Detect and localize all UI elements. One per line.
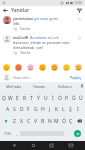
button[interactable]: 0 (63, 90, 70, 103)
button[interactable]: grin (50, 63, 59, 72)
button[interactable]: I (74, 103, 81, 115)
staticText: L (62, 106, 65, 113)
button[interactable]: Yanıt ekle… (12, 75, 69, 80)
staticText: Paylaş (70, 75, 81, 80)
staticText: A (6, 106, 10, 113)
staticText: Ö (62, 118, 66, 125)
staticText: Ü (79, 95, 83, 102)
button[interactable]: hug (2, 63, 11, 72)
staticText: Ç (69, 118, 73, 125)
button[interactable]: Keyboard (67, 142, 74, 149)
button[interactable]: N (46, 115, 53, 127)
button[interactable]: 2 (7, 90, 14, 103)
button[interactable]: Kullanıcı (52, 82, 78, 90)
staticText: yoneticixxx (13, 16, 33, 21)
button[interactable]: Like (76, 16, 82, 22)
staticText: Ş (69, 106, 72, 113)
staticText: 6 (38, 92, 40, 95)
button[interactable]: S (11, 103, 18, 115)
button[interactable]: yoneticixxx (0, 14, 85, 33)
button[interactable]: wink (62, 63, 71, 72)
button[interactable]: G (32, 103, 39, 115)
button[interactable]: Backspace (74, 115, 84, 127)
staticText: 1 (3, 92, 5, 95)
staticText: 1g (13, 27, 17, 31)
staticText: E (16, 95, 19, 102)
button[interactable]: 6 (35, 90, 42, 103)
staticText: hazirsiniz, elinde ve pusmani olan ikins… (13, 40, 70, 50)
staticText: S (13, 106, 16, 113)
button[interactable]: X (18, 115, 25, 127)
button[interactable]: Shift (1, 115, 11, 127)
button[interactable]: blossom (26, 63, 35, 72)
button[interactable]: Tamam (26, 82, 52, 90)
button[interactable]: Merhaba (0, 82, 26, 90)
button[interactable]: Back (11, 142, 18, 149)
button[interactable]: Yanıtla (20, 51, 31, 55)
button[interactable]: Ü (77, 90, 84, 103)
button[interactable]: Comma (13, 127, 20, 140)
button[interactable]: Send (71, 127, 84, 140)
button[interactable]: 4 (21, 90, 28, 103)
button[interactable]: B (39, 115, 46, 127)
button[interactable]: 3 (14, 90, 21, 103)
button[interactable]: 5 (28, 90, 35, 103)
button[interactable]: Like (76, 35, 82, 41)
button[interactable]: Ç (67, 115, 74, 127)
button[interactable]: A (4, 103, 11, 115)
staticText: U (44, 95, 48, 102)
staticText: 8 (52, 92, 54, 95)
staticText: I (52, 95, 54, 102)
button[interactable]: ?123 (1, 127, 13, 140)
staticText: 5 (31, 92, 33, 95)
button[interactable]: J (46, 103, 53, 115)
button[interactable]: H (39, 103, 46, 115)
button[interactable]: Ş (67, 103, 74, 115)
staticText: B (41, 118, 45, 125)
staticText: I (77, 106, 79, 113)
staticText: 3dk. (13, 21, 21, 26)
staticText: , (16, 131, 18, 136)
button[interactable]: smile (38, 63, 47, 72)
button[interactable]: laugh (74, 63, 83, 72)
staticText: meLLoW (13, 35, 29, 40)
staticText: M (54, 118, 59, 125)
button[interactable]: Ö (60, 115, 67, 127)
staticText: J (49, 106, 51, 113)
button[interactable]: Voice input (78, 82, 85, 90)
staticText: G (34, 106, 38, 113)
button[interactable]: Paylaş (69, 75, 82, 80)
staticText: X (20, 118, 23, 125)
button[interactable]: C (25, 115, 32, 127)
staticText: 14:05 (74, 1, 83, 5)
button[interactable]: 9 (56, 90, 63, 103)
button[interactable]: 7 (42, 90, 49, 103)
button[interactable]: D (18, 103, 25, 115)
staticText: Yanıt ekle… (13, 75, 32, 80)
button[interactable]: Z (11, 115, 18, 127)
button[interactable]: K (53, 103, 60, 115)
button[interactable]: Filter (76, 7, 83, 14)
button[interactable]: Back (2, 7, 9, 14)
button[interactable]: F (25, 103, 32, 115)
button[interactable]: L (60, 103, 67, 115)
staticText: 0 (66, 92, 68, 95)
button[interactable]: V (32, 115, 39, 127)
staticText: 3 (17, 92, 19, 95)
button[interactable]: Ğ (70, 90, 77, 103)
staticText: 2 (10, 92, 12, 95)
button[interactable]: Recents (48, 142, 55, 149)
button[interactable]: 1 (1, 90, 7, 103)
button[interactable]: Home (30, 142, 37, 149)
staticText: . (67, 131, 69, 136)
staticText: 1g (13, 51, 17, 55)
button[interactable]: meLLoW (0, 33, 85, 57)
button[interactable]: fire (14, 63, 23, 72)
staticText: Kullanıcı (58, 84, 72, 89)
button[interactable]: 8 (49, 90, 56, 103)
staticText: 9 (59, 92, 61, 95)
button[interactable]: M (53, 115, 60, 127)
button[interactable]: Yanıtla (20, 27, 31, 31)
button[interactable]: Space (20, 130, 64, 137)
